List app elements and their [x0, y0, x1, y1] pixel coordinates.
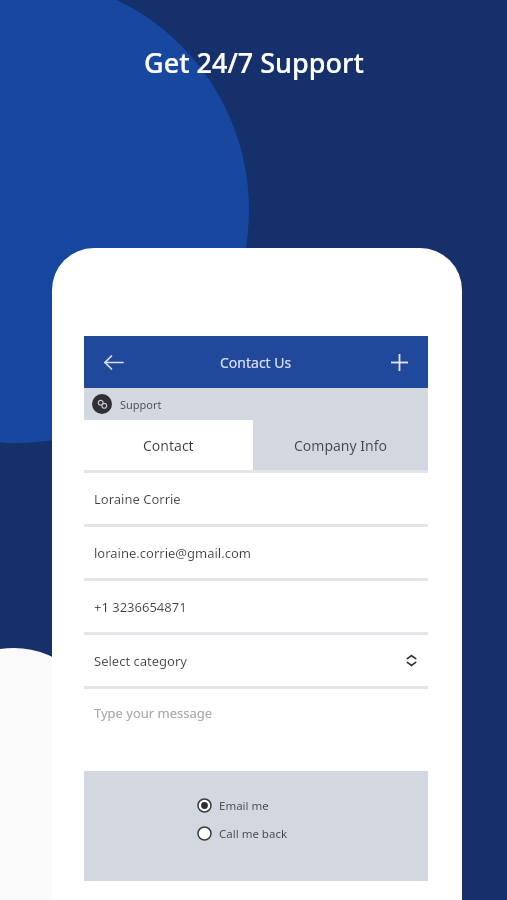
button[interactable]: Support	[92, 388, 428, 420]
staticText: Support	[120, 397, 162, 412]
button[interactable]: Back	[96, 345, 130, 379]
button[interactable]: Loraine Corrie	[94, 473, 428, 524]
button[interactable]: Type your message	[94, 704, 428, 771]
button[interactable]: Call me back	[197, 823, 315, 844]
button[interactable]: Contact	[84, 420, 253, 470]
staticText: Email me	[219, 798, 269, 814]
staticText: Contact Us	[220, 353, 292, 372]
staticText: Contact	[143, 436, 194, 455]
staticText: Company Info	[294, 436, 387, 455]
staticText: Type your message	[94, 704, 213, 722]
staticText: Get 24/7 Support	[144, 44, 364, 81]
staticText: Loraine Corrie	[94, 490, 181, 508]
button[interactable]: Select category	[94, 635, 418, 686]
button[interactable]: Add	[382, 345, 416, 379]
staticText: +1 3236654871	[94, 598, 187, 616]
staticText: loraine.corrie@gmail.com	[94, 544, 251, 562]
button[interactable]: Email me	[197, 795, 315, 816]
button[interactable]: +1 3236654871	[94, 581, 428, 632]
button[interactable]: loraine.corrie@gmail.com	[94, 527, 428, 578]
button[interactable]: Company Info	[253, 420, 428, 470]
staticText: Select category	[94, 652, 187, 670]
staticText: Call me back	[219, 826, 288, 842]
